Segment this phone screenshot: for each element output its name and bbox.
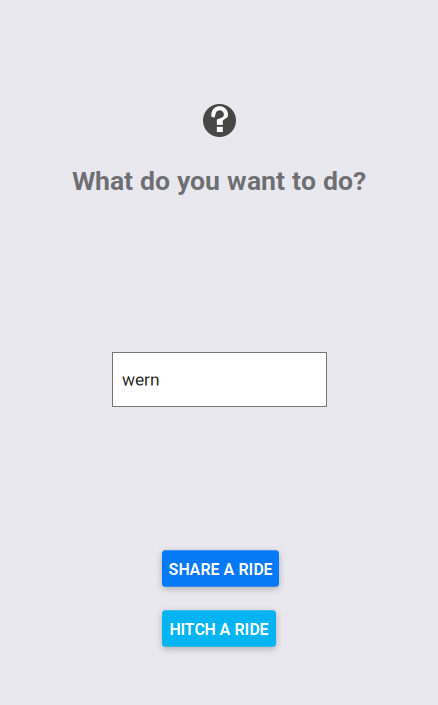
button[interactable]: HITCH A RIDE: [162, 610, 276, 647]
staticText: wern: [122, 369, 160, 390]
staticText: SHARE A RIDE: [168, 560, 272, 579]
staticText: What do you want to do?: [72, 165, 366, 197]
button[interactable]: wern: [112, 352, 327, 407]
staticText: HITCH A RIDE: [169, 620, 268, 639]
button[interactable]: SHARE A RIDE: [162, 550, 279, 587]
